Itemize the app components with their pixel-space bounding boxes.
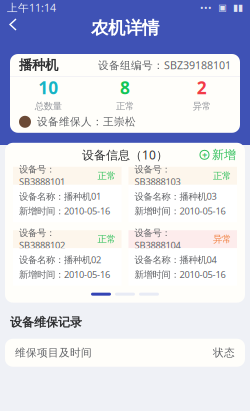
staticText: 总数量 [35, 100, 62, 112]
staticText: 正常 [116, 100, 134, 112]
staticText: 维保项目及时间 [15, 346, 92, 359]
staticText: 设备号：SB3888101 [19, 164, 65, 188]
staticText: 设备名称：播种机01 [19, 190, 101, 202]
button[interactable]: 设备号：SB3888103 [128, 167, 237, 222]
staticText: 状态 [213, 346, 235, 359]
staticText: 设备组编号：SBZ39188101 [98, 58, 231, 72]
staticText: 上午11:14 [7, 0, 56, 15]
staticText: 异常 [213, 233, 231, 245]
staticText: 10 [38, 76, 58, 99]
staticText: 8 [120, 76, 130, 99]
staticText: + [202, 148, 207, 161]
staticText: 设备名称：播种机04 [134, 253, 216, 266]
staticText: 设备维保人：王崇松 [37, 115, 136, 128]
staticText: 设备名称：播种机02 [19, 253, 101, 266]
button[interactable]: 设备号：SB3888102 [13, 230, 121, 286]
staticText: ▮▮ [233, 2, 243, 13]
staticText: 正常 [97, 233, 115, 245]
staticText: 新增 [212, 147, 236, 162]
staticText: 新增时间：2010-05-16 [134, 268, 225, 281]
button[interactable]: 设备号：SB3888101 [13, 167, 121, 222]
staticText: 新增时间：2010-05-16 [19, 204, 110, 217]
staticText: 正常 [213, 170, 231, 182]
staticText: 新增时间：2010-05-16 [134, 204, 225, 217]
staticText: 新增时间：2010-05-16 [19, 268, 110, 281]
staticText: 正常 [97, 170, 115, 182]
staticText: ▣ [212, 2, 233, 13]
staticText: 异常 [193, 100, 211, 112]
staticText: 设备维保记录 [10, 315, 82, 330]
staticText: 播种机 [19, 57, 58, 73]
staticText: 2 [197, 76, 207, 99]
staticText: 设备信息（10） [82, 147, 168, 163]
staticText: 设备名称：播种机03 [134, 190, 216, 202]
staticText: ••• [200, 1, 212, 14]
staticText: 设备号：SB3888103 [134, 164, 180, 188]
staticText: 设备号：SB3888104 [134, 227, 180, 251]
button[interactable]: 返回 [9, 19, 25, 37]
staticText: 农机详情 [91, 17, 159, 39]
button[interactable]: 设备号：SB3888104 [128, 230, 237, 286]
staticText: 设备号：SB3888102 [19, 227, 65, 251]
button[interactable]: + [200, 147, 245, 162]
